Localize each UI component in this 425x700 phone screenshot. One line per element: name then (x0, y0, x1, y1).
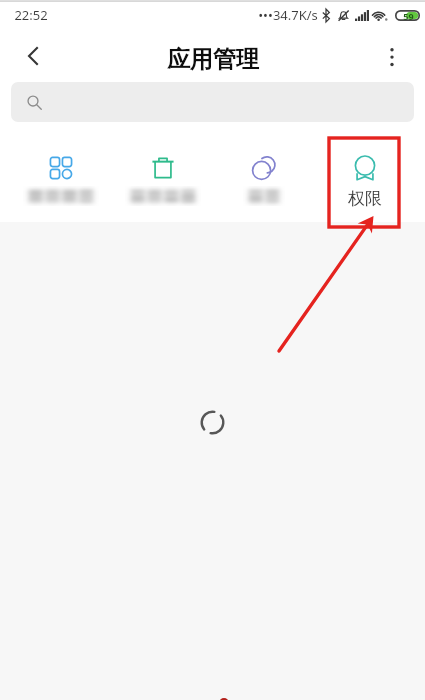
button[interactable]: 双开 (213, 122, 314, 203)
button[interactable]: Back (0, 30, 52, 82)
button[interactable]: Search (11, 82, 414, 122)
staticText: 22:52 (14, 6, 48, 24)
button[interactable]: More options (373, 30, 425, 82)
button[interactable]: 权限 (314, 122, 415, 209)
staticText: 59 (403, 10, 414, 21)
button[interactable]: 安装管理 (10, 122, 112, 203)
staticText: 权限 (348, 188, 382, 209)
staticText: •••34.7K/s (258, 6, 318, 24)
button[interactable]: 批量卸载 (112, 122, 213, 203)
staticText: 应用管理 (167, 45, 259, 74)
